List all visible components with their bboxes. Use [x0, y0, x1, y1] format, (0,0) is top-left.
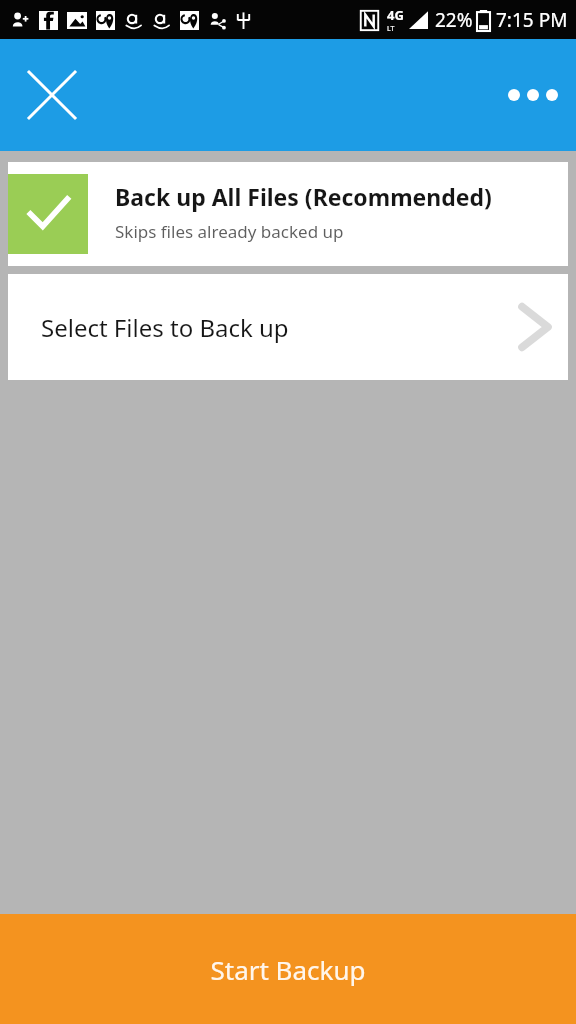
staticText: 7:15 PM — [496, 7, 568, 33]
button[interactable]: More options — [498, 60, 568, 130]
staticText: Start Backup — [210, 952, 366, 987]
button[interactable]: Start Backup — [0, 914, 576, 1024]
button[interactable]: Select Files to Back up — [8, 274, 568, 380]
staticText: Back up All Files (Recommended) — [115, 181, 492, 212]
button[interactable]: Close — [14, 57, 90, 133]
staticText: 22% — [435, 7, 473, 33]
staticText: LT — [387, 24, 395, 34]
staticText: Skips files already backed up — [115, 220, 344, 243]
staticText: 4G — [387, 6, 404, 24]
staticText: Select Files to Back up — [41, 311, 289, 344]
button[interactable]: Back up All Files (Recommended) — [8, 162, 568, 266]
